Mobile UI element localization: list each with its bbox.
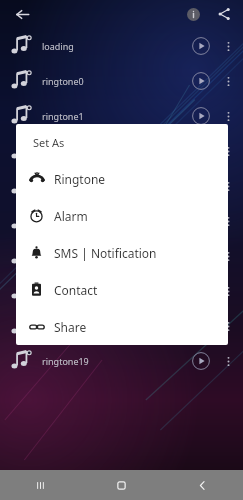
button[interactable]: ringtone1 [0, 98, 243, 133]
button[interactable]: More options [215, 103, 241, 129]
button[interactable]: Back [162, 470, 243, 500]
staticText: Contact [54, 282, 98, 298]
button[interactable]: ringtone13 [0, 133, 243, 168]
button[interactable]: ringtone17 [0, 273, 243, 308]
button[interactable]: SMS | Notification [16, 234, 228, 271]
button[interactable]: loading [0, 28, 243, 63]
button[interactable]: More options [215, 278, 241, 304]
button[interactable]: ringtone16 [0, 238, 243, 273]
button[interactable]: Info [180, 1, 206, 27]
staticText: ringtone18 [42, 320, 187, 332]
staticText: Set As [33, 135, 65, 150]
staticText: loading [42, 40, 187, 52]
button[interactable]: More options [215, 313, 241, 339]
staticText: ringtone13 [42, 145, 187, 157]
button[interactable]: More options [215, 243, 241, 269]
staticText: ringtone14 [42, 180, 187, 192]
button[interactable]: Play [187, 32, 215, 60]
button[interactable]: Home [81, 470, 162, 500]
button[interactable]: Share [16, 308, 228, 345]
button[interactable]: ringtone18 [0, 308, 243, 343]
button[interactable]: More options [215, 33, 241, 59]
staticText: ringtone19 [42, 355, 187, 367]
button[interactable]: More options [215, 138, 241, 164]
button[interactable]: More options [215, 208, 241, 234]
button[interactable]: ringtone14 [0, 168, 243, 203]
button[interactable]: Recents [0, 470, 81, 500]
staticText: ringtone0 [42, 75, 187, 87]
button[interactable]: Share [211, 1, 237, 27]
staticText: SMS | Notification [54, 245, 157, 261]
button[interactable]: ringtone19 [0, 343, 243, 378]
button[interactable]: More options [215, 348, 241, 374]
staticText: Alarm [54, 208, 88, 224]
button[interactable]: Play [187, 347, 215, 375]
button[interactable]: Back [8, 0, 36, 28]
staticText: ringtone17 [42, 285, 187, 297]
staticText: ringtone1 [42, 110, 187, 122]
button[interactable]: ringtone0 [0, 63, 243, 98]
staticText: Share [54, 319, 87, 335]
staticText: ringtone15 [42, 215, 187, 227]
button[interactable]: Play [187, 102, 215, 130]
button[interactable]: Ringtone [16, 160, 228, 197]
staticText: ringtone16 [42, 250, 187, 262]
button[interactable]: Alarm [16, 197, 228, 234]
button[interactable]: Contact [16, 271, 228, 308]
button[interactable]: ringtone15 [0, 203, 243, 238]
button[interactable]: More options [215, 173, 241, 199]
staticText: Ringtone [54, 171, 106, 187]
button[interactable]: More options [215, 68, 241, 94]
button[interactable]: Play [187, 67, 215, 95]
